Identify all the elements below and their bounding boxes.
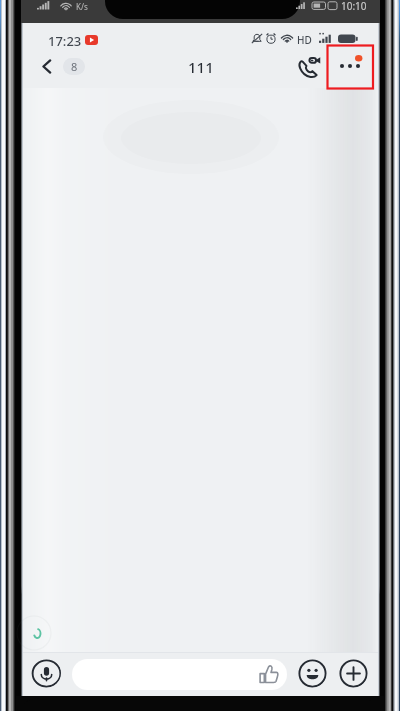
staticText: K/s — [76, 1, 88, 12]
button[interactable]: Back, 8 unread — [37, 49, 91, 84]
button[interactable]: Voice message — [31, 658, 61, 688]
button[interactable]: More options — [333, 49, 367, 83]
button[interactable] — [72, 659, 287, 690]
button[interactable]: Video call — [293, 49, 327, 83]
staticText: HD — [297, 33, 312, 47]
button[interactable]: Emoji — [297, 658, 327, 688]
button[interactable]: More — [338, 658, 368, 688]
staticText: 8 — [71, 59, 78, 74]
staticText: 10:10 — [341, 0, 367, 13]
staticText: 111 — [188, 57, 214, 77]
staticText: 17:23 — [48, 32, 82, 50]
